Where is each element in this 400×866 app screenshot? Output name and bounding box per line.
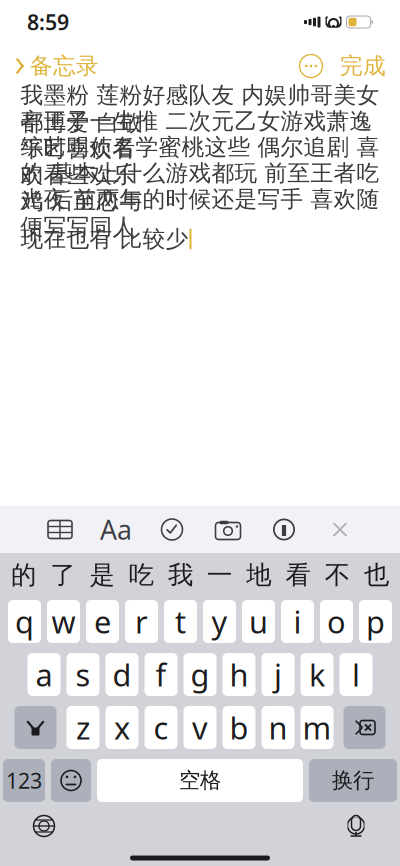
button[interactable]: 我	[161, 554, 200, 596]
staticText: a	[35, 654, 52, 695]
button[interactable]: n	[261, 706, 294, 749]
button[interactable]: 一	[200, 554, 239, 596]
staticText: 不	[325, 559, 350, 590]
button[interactable]: 了	[43, 554, 82, 596]
button[interactable]: 备忘录	[14, 46, 107, 86]
button[interactable]: Markup	[256, 507, 312, 551]
staticText: 光夜 前两年的时候还是写手 喜欢随便写写同人	[20, 185, 379, 241]
staticText: b	[229, 707, 248, 748]
staticText: q	[15, 601, 34, 642]
staticText: f	[155, 654, 166, 695]
staticText: Aa	[100, 512, 132, 547]
button[interactable]: 是	[82, 554, 122, 596]
button[interactable]: p	[359, 600, 392, 643]
staticText: r	[135, 601, 148, 642]
button[interactable]: 也	[357, 554, 396, 596]
button[interactable]: 看	[278, 554, 318, 596]
button[interactable]: 123	[3, 759, 45, 802]
staticText: c	[153, 707, 168, 748]
staticText: j	[274, 654, 282, 695]
staticText: l	[352, 654, 360, 695]
staticText: 一	[207, 559, 232, 590]
button[interactable]: u	[242, 600, 275, 643]
button[interactable]: Text format	[88, 507, 144, 551]
staticText: 的 基本上什么游戏都玩 前至王者吃鸡 后至恋与	[20, 159, 379, 215]
staticText: i	[293, 601, 301, 642]
button[interactable]: g	[183, 653, 216, 696]
button[interactable]: k	[300, 653, 333, 696]
button[interactable]: 完成	[328, 46, 386, 86]
staticText: 8:59	[27, 8, 69, 36]
button[interactable]: 吃	[122, 554, 161, 596]
staticText: x	[114, 707, 130, 748]
staticText: 看	[285, 559, 310, 590]
staticText: 了	[50, 559, 75, 590]
button[interactable]: m	[300, 706, 333, 749]
staticText: 现在也有 比较少	[20, 225, 188, 253]
button[interactable]: z	[66, 706, 99, 749]
button[interactable]: b	[222, 706, 255, 749]
staticText: 我	[168, 559, 193, 590]
staticText: 吃	[129, 559, 154, 590]
staticText: h	[229, 654, 248, 695]
button[interactable]: t	[164, 600, 197, 643]
button[interactable]: o	[320, 600, 353, 643]
staticText: 备忘录	[30, 52, 99, 80]
staticText: z	[76, 707, 90, 748]
staticText: w	[51, 601, 75, 642]
button[interactable]: i	[281, 600, 314, 643]
staticText: 综艺明侦名学蜜桃这些 偶尔追剧 喜欢看些欢乐	[20, 133, 379, 189]
staticText: 空格	[179, 767, 221, 794]
staticText: m	[302, 707, 331, 748]
button[interactable]: j	[261, 653, 294, 696]
button[interactable]: a	[27, 653, 60, 696]
staticText: d	[112, 654, 131, 695]
button[interactable]: Emoji	[51, 759, 91, 802]
button[interactable]: Switch keyboard	[22, 804, 66, 848]
button[interactable]: d	[105, 653, 138, 696]
staticText: g	[190, 654, 209, 695]
button[interactable]: Delete	[343, 706, 385, 749]
staticText: 也	[364, 559, 389, 590]
button[interactable]: c	[144, 706, 177, 749]
button[interactable]: y	[203, 600, 236, 643]
button[interactable]: 的	[4, 554, 43, 596]
staticText: k	[309, 654, 325, 695]
button[interactable]: 空格	[97, 759, 303, 802]
staticText: s	[75, 654, 90, 695]
button[interactable]: Dictate	[334, 804, 378, 848]
button[interactable]: Close	[312, 507, 368, 551]
staticText: y	[211, 601, 227, 642]
button[interactable]: f	[144, 653, 177, 696]
button[interactable]: 不	[318, 554, 357, 596]
staticText: 我墨粉 莲粉好感队友 内娱帅哥美女都博爱 白敬	[20, 81, 379, 137]
button[interactable]: q	[8, 600, 41, 643]
staticText: 亭王子一生推 二次元乙女游戏萧逸 平时喜欢看	[20, 107, 372, 163]
staticText: o	[327, 601, 346, 642]
button[interactable]: s	[66, 653, 99, 696]
button[interactable]: l	[339, 653, 372, 696]
button[interactable]: Camera	[200, 507, 256, 551]
button[interactable]: e	[86, 600, 119, 643]
staticText: v	[192, 707, 208, 748]
staticText: 是	[89, 559, 114, 590]
button[interactable]: w	[47, 600, 80, 643]
button[interactable]: r	[125, 600, 158, 643]
staticText: 123	[6, 766, 42, 795]
staticText: 地	[246, 559, 271, 590]
button[interactable]: Insert table	[32, 507, 88, 551]
staticText: t	[175, 601, 186, 642]
button[interactable]: v	[183, 706, 216, 749]
button[interactable]: More	[294, 49, 328, 83]
staticText: n	[268, 707, 287, 748]
button[interactable]: Checklist	[144, 507, 200, 551]
button[interactable]: 换行	[309, 759, 397, 802]
button[interactable]: 地	[239, 554, 278, 596]
button[interactable]: Shift	[14, 706, 56, 749]
staticText: 换行	[332, 767, 374, 794]
button[interactable]: h	[222, 653, 255, 696]
staticText: p	[366, 601, 385, 642]
staticText: e	[94, 601, 111, 642]
staticText: u	[249, 601, 268, 642]
button[interactable]: x	[105, 706, 138, 749]
